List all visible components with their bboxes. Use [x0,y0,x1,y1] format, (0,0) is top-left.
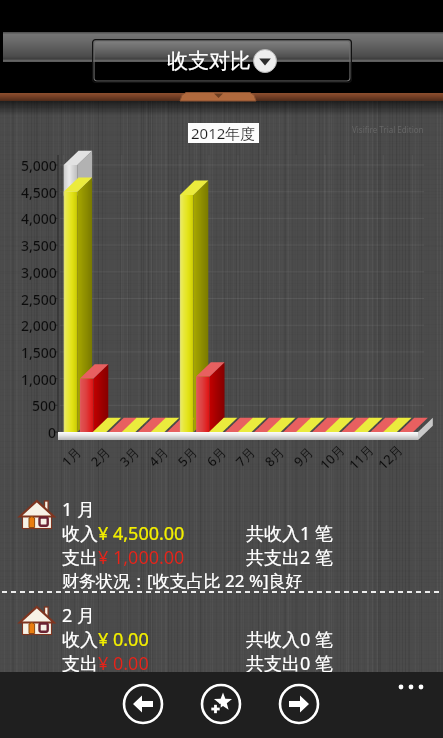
staticText: 3,000 [21,263,57,282]
staticText: 8月 [261,443,288,470]
staticText: 5月 [174,443,201,470]
staticText: 11月 [345,441,377,473]
staticText: 2,500 [21,290,57,309]
staticText: 1 月 [62,497,95,522]
staticText: 12月 [374,441,406,473]
button[interactable]: 添加 [199,682,243,726]
staticText: 1,000 [21,370,57,389]
staticText: 收入¥ 0.00 [62,627,149,652]
staticText: 支出¥ 1,000.00 [62,545,185,570]
staticText: 收支对比 [167,48,251,74]
staticText: 2,000 [21,316,57,335]
button[interactable]: 更多 [392,676,432,698]
staticText: 5,000 [21,156,57,175]
staticText: 共收入1 笔 [246,521,333,546]
staticText: 支出¥ 0.00 [62,651,149,676]
staticText: 收入¥ 4,500.00 [62,521,185,546]
staticText: 2 月 [62,603,95,628]
staticText: 共支出0 笔 [246,651,333,676]
button[interactable]: 下一个 [277,682,321,726]
button[interactable]: 1 月 [0,495,443,595]
staticText: 共支出2 笔 [246,545,333,570]
other: 展开 [253,49,277,73]
staticText: 共收入0 笔 [246,627,333,652]
staticText: 1月 [58,443,85,470]
staticText: 1,500 [21,343,57,362]
button[interactable]: 2 月 [0,601,443,675]
button[interactable]: 收支对比 [94,41,350,81]
staticText: 2月 [87,443,114,470]
staticText: 3,500 [21,236,57,255]
staticText: Visifire Trial Edition [352,124,424,135]
staticText: 0 [48,423,57,442]
staticText: 6月 [203,443,230,470]
button[interactable]: 上一个 [121,682,165,726]
staticText: 4,000 [21,209,57,228]
staticText: 3月 [116,443,143,470]
staticText: 9月 [290,443,317,470]
staticText: 财务状况：[收支占比 22 %]良好 [62,569,303,592]
staticText: 500 [32,396,57,415]
staticText: 7月 [232,443,259,470]
staticText: 4月 [145,443,172,470]
staticText: 2012年度 [191,123,256,143]
staticText: 10月 [316,441,348,473]
staticText: 4,500 [21,183,57,202]
